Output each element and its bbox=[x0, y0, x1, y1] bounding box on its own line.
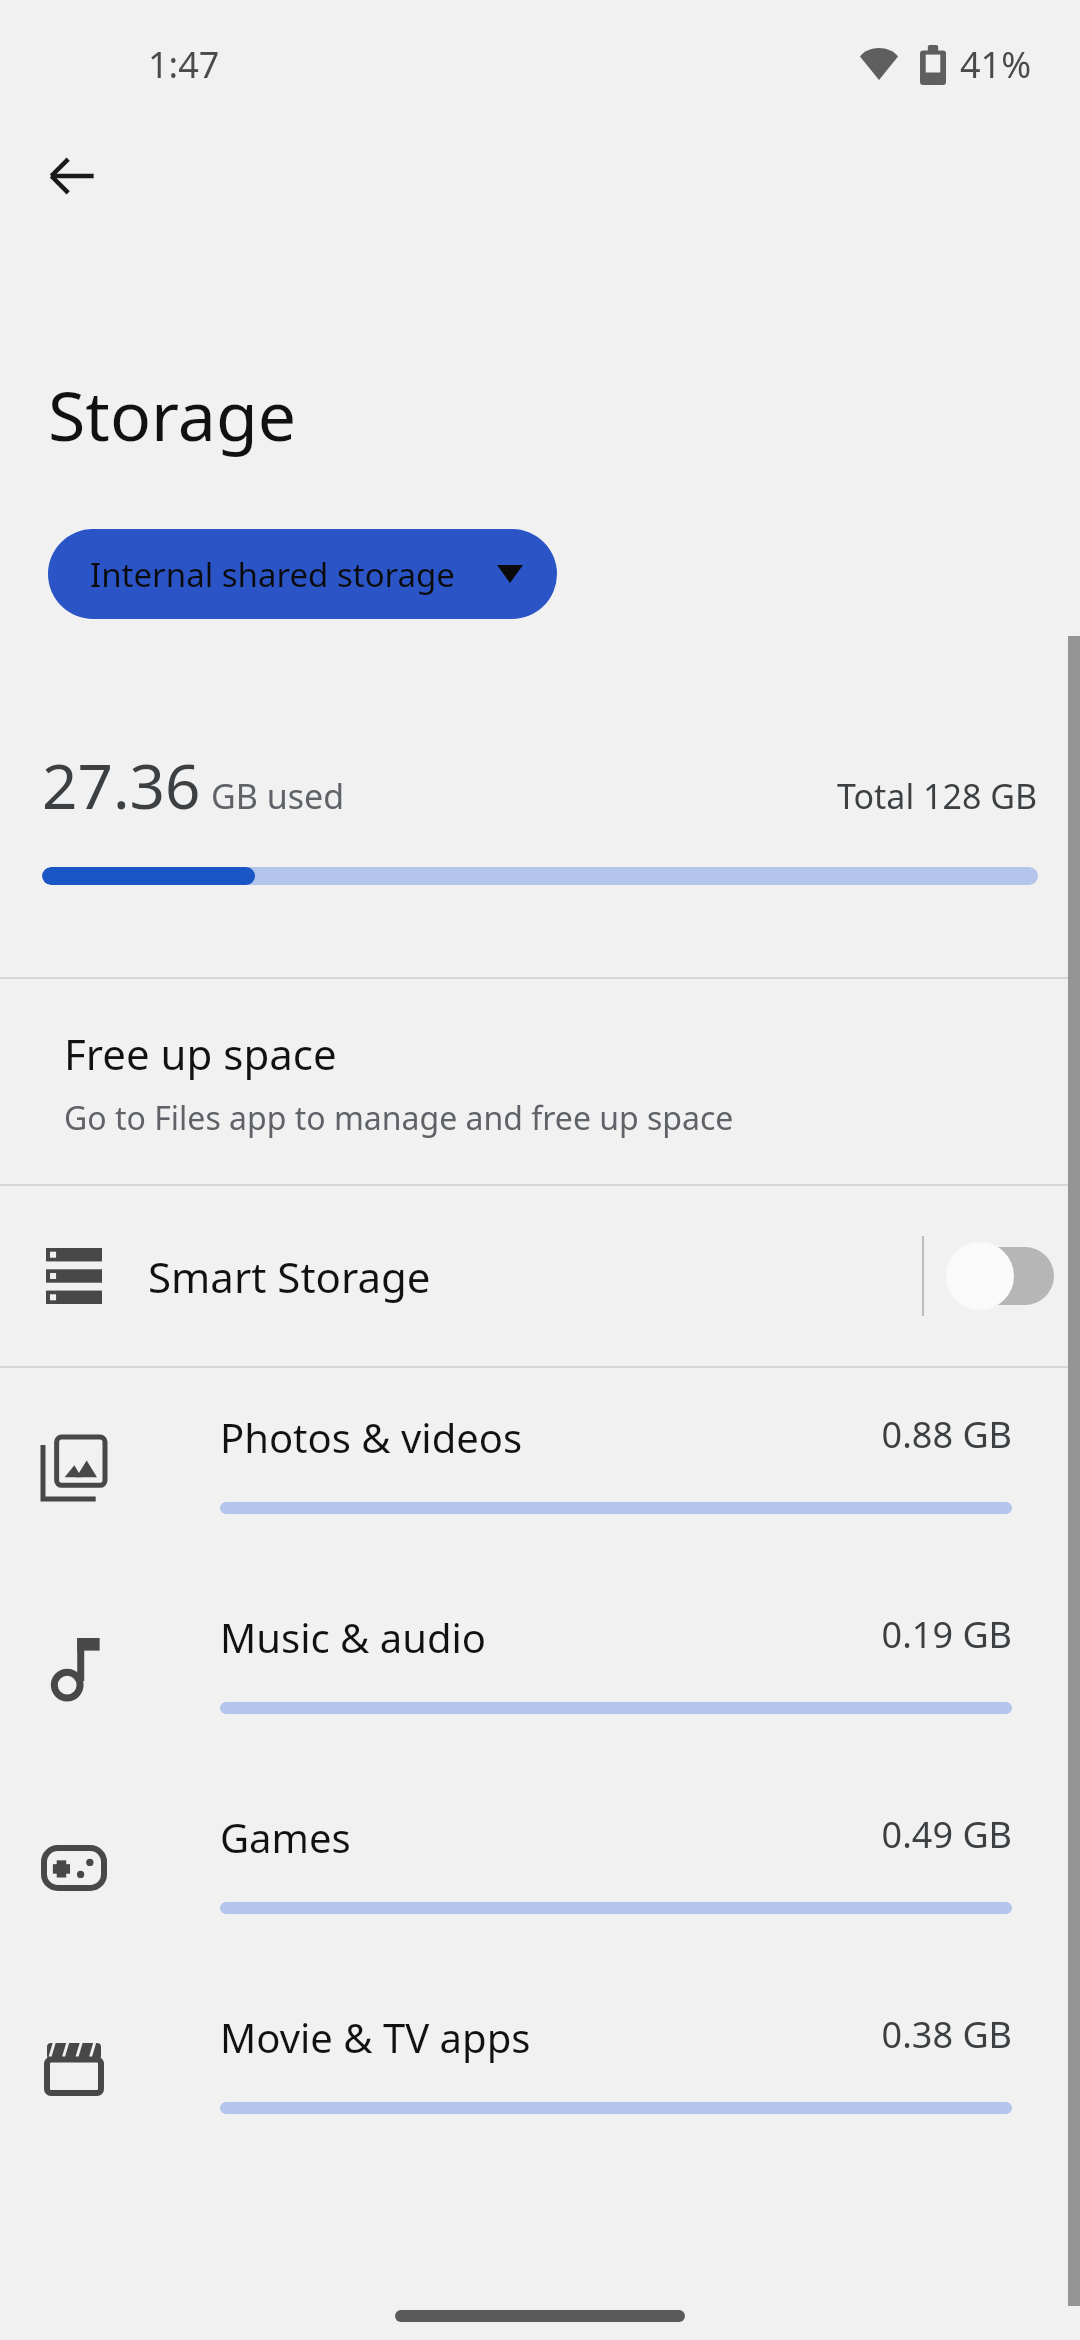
staticText: Total 128 GB bbox=[837, 773, 1038, 819]
staticText: Movie & TV apps bbox=[220, 2010, 531, 2064]
staticText: 1:47 bbox=[148, 40, 220, 89]
staticText: Smart Storage bbox=[148, 1248, 431, 1305]
button[interactable]: Music & audio bbox=[0, 1568, 1080, 1768]
button[interactable]: Internal shared storage bbox=[48, 529, 557, 619]
staticText: 0.38 GB bbox=[881, 2010, 1012, 2059]
button[interactable]: Photos & videos bbox=[0, 1368, 1080, 1568]
staticText: Music & audio bbox=[220, 1610, 487, 1664]
staticText: Games bbox=[220, 1810, 351, 1864]
staticText: Photos & videos bbox=[220, 1410, 523, 1464]
button[interactable]: Smart Storage toggle bbox=[924, 1186, 1080, 1366]
staticText: Storage bbox=[48, 368, 297, 461]
staticText: Internal shared storage bbox=[90, 552, 455, 597]
button[interactable]: Games bbox=[0, 1768, 1080, 1968]
staticText: 0.88 GB bbox=[881, 1410, 1012, 1459]
staticText: 0.49 GB bbox=[881, 1810, 1012, 1859]
staticText: Free up space bbox=[64, 1025, 337, 1082]
staticText: 0.19 GB bbox=[881, 1610, 1012, 1659]
staticText: 27.36 bbox=[42, 743, 201, 827]
button[interactable]: Free up space bbox=[0, 979, 1080, 1184]
button[interactable]: Movie & TV apps bbox=[0, 1968, 1080, 2168]
button[interactable]: Smart Storage bbox=[0, 1186, 1080, 1366]
staticText: GB used bbox=[211, 773, 345, 819]
staticText: Go to Files app to manage and free up sp… bbox=[64, 1096, 734, 1140]
button[interactable]: Back bbox=[30, 134, 114, 218]
staticText: 41% bbox=[960, 40, 1032, 89]
